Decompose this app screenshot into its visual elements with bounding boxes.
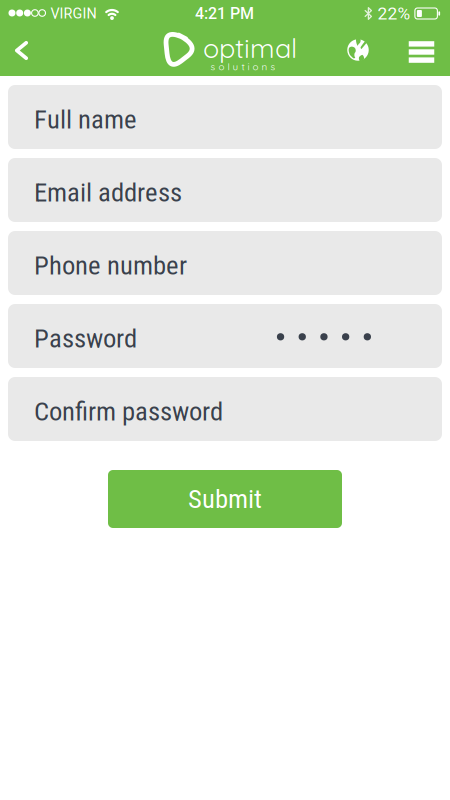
button[interactable]: Email address [8,158,442,222]
staticText: 22% [377,3,410,24]
button[interactable]: Menu [401,31,442,73]
button[interactable]: Full name [8,85,442,149]
button[interactable]: Password [8,304,442,368]
staticText: VIRGIN [50,5,96,22]
button[interactable]: Phone number [8,231,442,295]
staticText: Full name [34,104,137,135]
button[interactable]: Language [339,29,377,71]
staticText: Email address [34,177,182,208]
staticText: Phone number [34,250,187,281]
staticText: 4:21 PM [195,4,254,23]
staticText: s o l u t i o n s [210,60,275,73]
button[interactable]: Confirm password [8,377,442,441]
staticText: Submit [188,483,262,515]
button[interactable]: Submit [108,470,342,528]
staticText: Confirm password [34,396,223,427]
staticText: Password [34,323,137,354]
button[interactable]: Back [3,27,40,74]
staticText: optimal [203,31,297,65]
